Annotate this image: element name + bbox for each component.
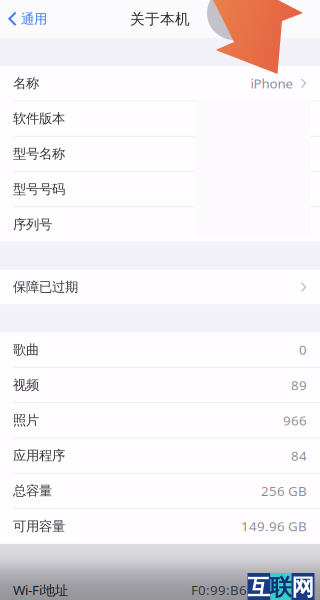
staticText: 软件版本 — [13, 110, 65, 127]
button[interactable]: 型号名称 — [0, 137, 320, 171]
staticText: iPhone — [250, 74, 293, 92]
staticText: 89 — [291, 376, 307, 394]
button[interactable]: 应用程序 — [0, 438, 320, 473]
staticText: 互 — [247, 574, 270, 600]
staticText: 关于本机 — [130, 10, 190, 28]
staticText: 视频 — [13, 377, 39, 393]
button[interactable]: 歌曲 — [0, 332, 320, 367]
staticText: 联 — [269, 574, 292, 600]
button[interactable]: 可用容量 — [0, 509, 320, 543]
button[interactable]: Wi-Fi地址 — [0, 572, 320, 600]
staticText: 照片 — [13, 412, 39, 428]
button[interactable]: 型号号码 — [0, 172, 320, 206]
button[interactable]: 通用 — [0, 5, 47, 33]
staticText: 名称 — [13, 75, 39, 91]
staticText: Wi-Fi地址 — [13, 581, 68, 599]
staticText: 保障已过期 — [13, 279, 78, 295]
staticText: 可用容量 — [13, 518, 65, 534]
button[interactable]: 照片 — [0, 403, 320, 438]
button[interactable]: 序列号 — [0, 207, 320, 242]
staticText: F0:99:B6 — [191, 581, 247, 599]
button[interactable]: 名称 — [0, 66, 320, 101]
staticText: 966 — [283, 411, 307, 429]
staticText: 序列号 — [13, 216, 52, 233]
staticText: 84 — [291, 447, 307, 464]
staticText: 应用程序 — [13, 447, 65, 464]
staticText: 256 GB — [261, 482, 307, 500]
staticText: 149.96 GB — [241, 517, 307, 535]
button[interactable]: 软件版本 — [0, 101, 320, 136]
button[interactable]: 视频 — [0, 368, 320, 402]
staticText: 总容量 — [13, 483, 52, 499]
staticText: 型号号码 — [13, 181, 65, 197]
staticText: 网 — [291, 574, 314, 600]
button[interactable]: 保障已过期 — [0, 270, 320, 304]
staticText: 型号名称 — [13, 146, 65, 162]
staticText: 歌曲 — [13, 341, 39, 358]
staticText: 通用 — [21, 11, 47, 27]
button[interactable]: 总容量 — [0, 474, 320, 508]
staticText: 0 — [299, 341, 307, 358]
